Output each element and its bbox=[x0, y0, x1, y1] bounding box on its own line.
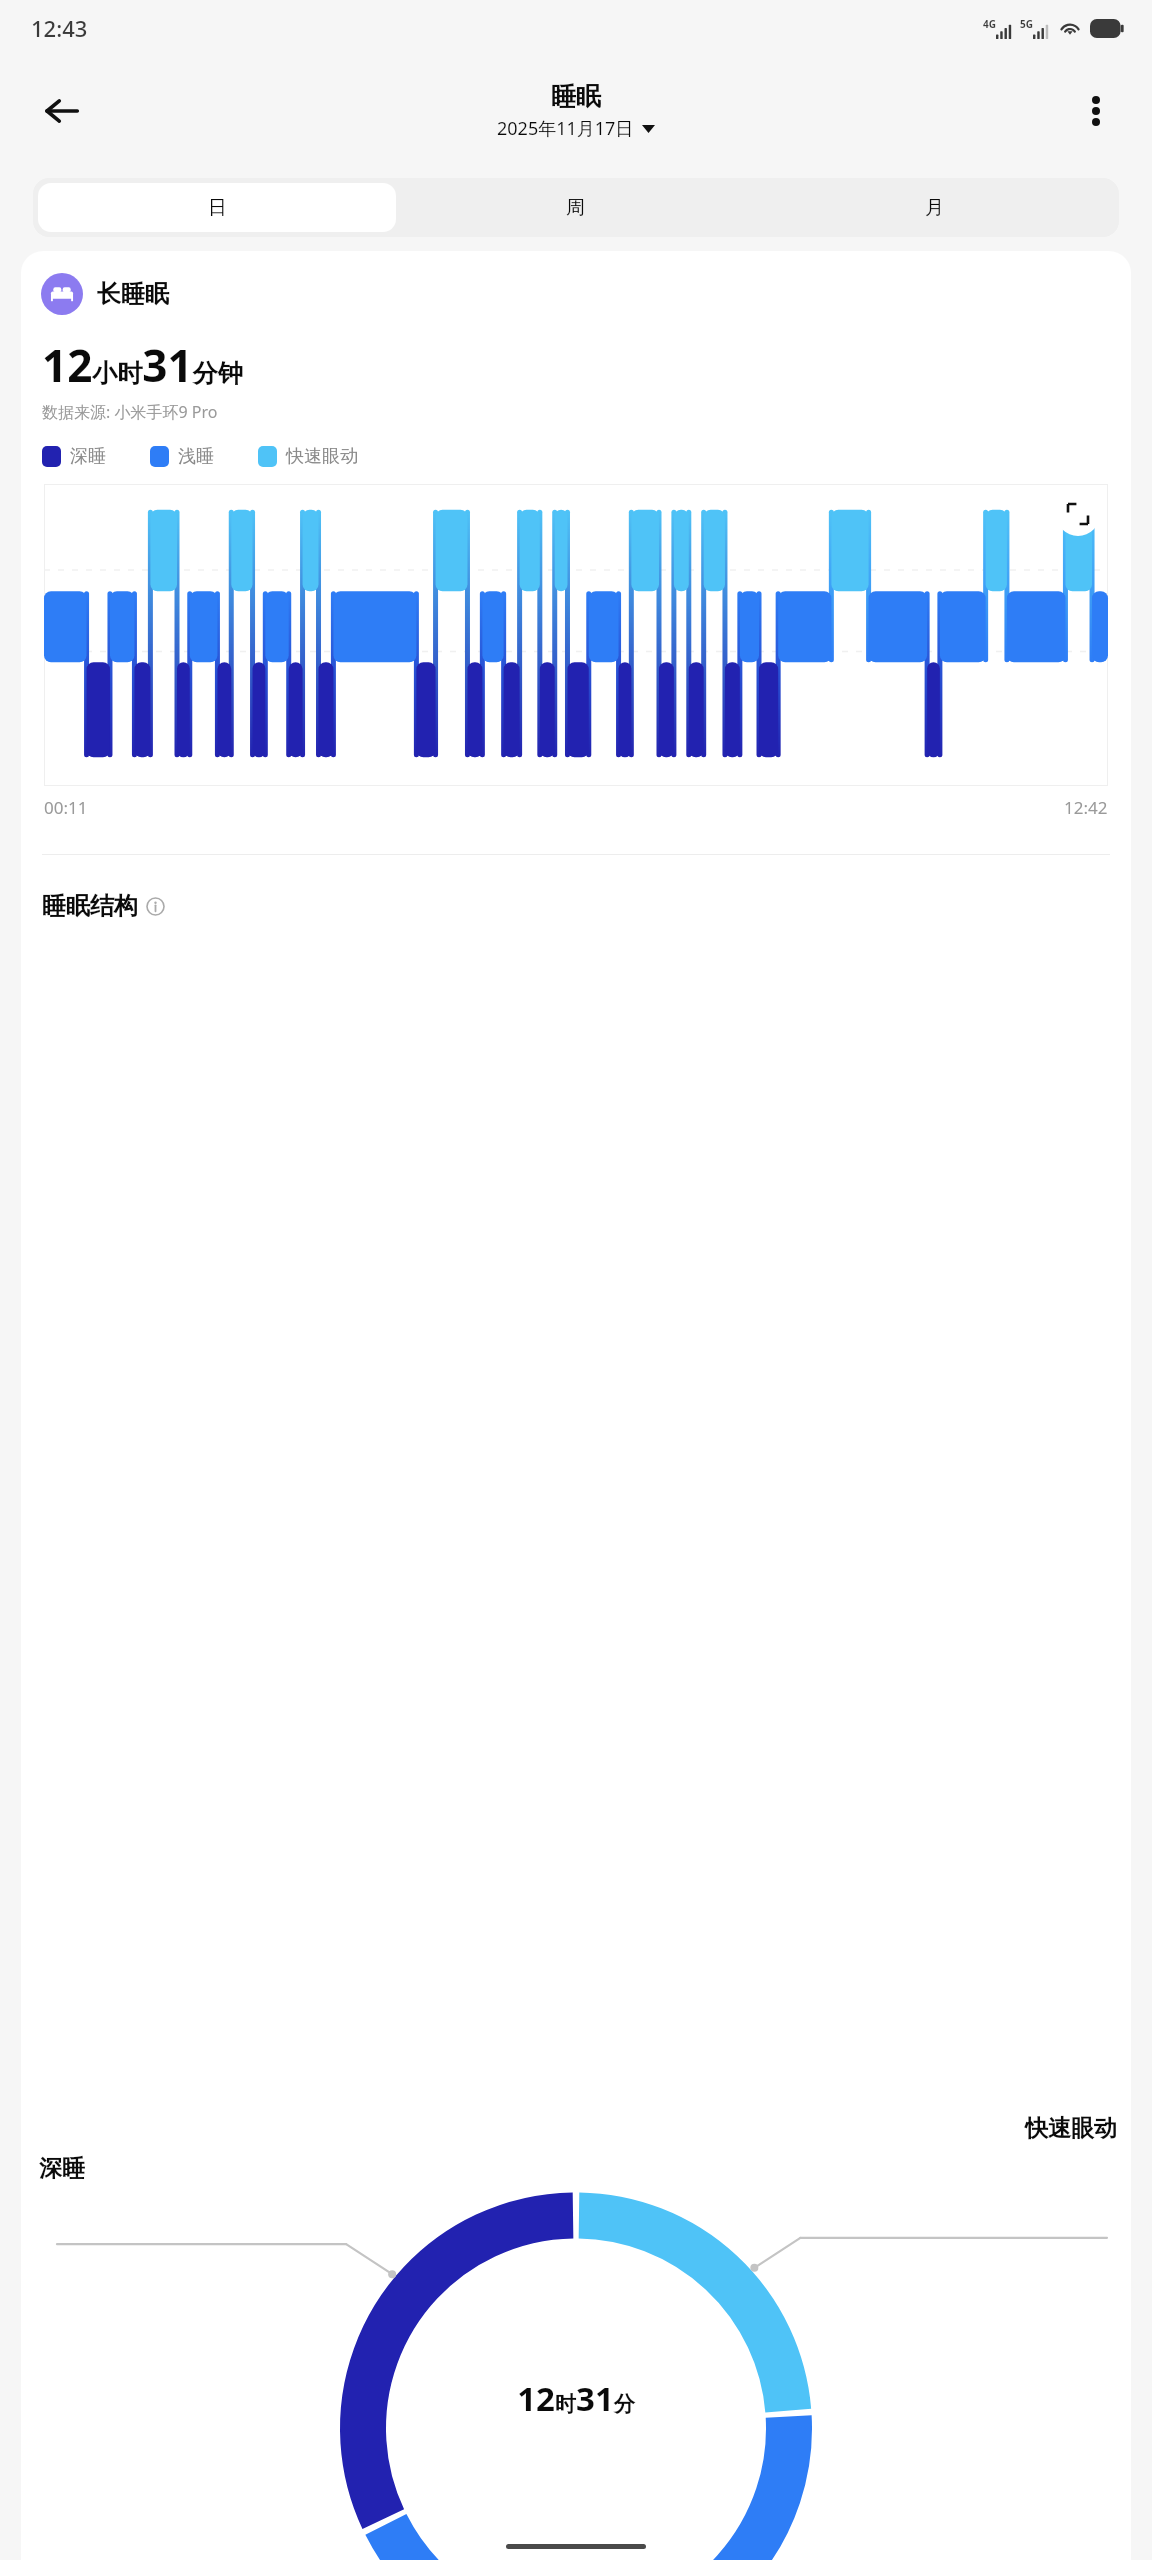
staticText: 周 bbox=[566, 196, 585, 220]
button[interactable]: More options bbox=[1068, 83, 1124, 139]
staticText: 长睡眠 bbox=[97, 279, 169, 309]
staticText: 日 bbox=[208, 196, 227, 220]
staticText: 12:43 bbox=[31, 13, 88, 43]
button[interactable]: 月 bbox=[755, 183, 1114, 232]
staticText: 12小时31分钟 bbox=[42, 335, 243, 395]
button[interactable]: Expand chart bbox=[1056, 492, 1100, 536]
staticText: 数据来源: 小米手环9 Pro bbox=[42, 401, 218, 423]
staticText: 睡眠结构 bbox=[42, 891, 138, 921]
staticText: 5G bbox=[1020, 17, 1033, 31]
button[interactable]: 周 bbox=[396, 183, 755, 232]
staticText: 睡眠 bbox=[551, 81, 601, 112]
staticText: 快速眼动 bbox=[1025, 2114, 1117, 2143]
staticText: 2025年11月17日 bbox=[497, 116, 634, 141]
button[interactable]: 睡眠结构 bbox=[42, 891, 165, 921]
staticText: 深睡 bbox=[39, 2154, 85, 2183]
button[interactable]: 日 bbox=[38, 183, 396, 232]
staticText: 4G bbox=[983, 17, 996, 31]
other: Info bbox=[146, 897, 165, 916]
staticText: 浅睡 bbox=[178, 445, 214, 468]
button[interactable]: 长睡眠 bbox=[41, 273, 169, 315]
staticText: 00:11 bbox=[44, 796, 88, 819]
staticText: 快速眼动 bbox=[286, 445, 358, 468]
staticText: 12:42 bbox=[1064, 796, 1108, 819]
staticText: 深睡 bbox=[70, 445, 106, 468]
staticText: 月 bbox=[925, 196, 944, 220]
button[interactable]: Back bbox=[30, 79, 94, 143]
button[interactable]: 2025年11月17日 bbox=[497, 116, 655, 141]
staticText: 12时31分 bbox=[517, 2376, 635, 2421]
